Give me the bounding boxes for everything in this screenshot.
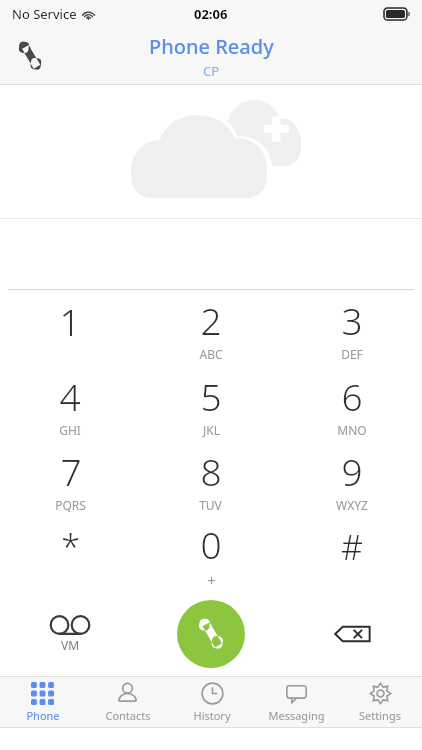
staticText: TUV (199, 497, 222, 513)
staticText: 6 (341, 371, 363, 421)
staticText: Settings (359, 708, 401, 723)
button[interactable]: # (281, 517, 422, 592)
button[interactable]: Contacts (85, 677, 170, 727)
staticText: WXYZ (336, 497, 368, 513)
button[interactable]: 1 (0, 290, 140, 366)
button[interactable]: Phone status (8, 34, 52, 78)
staticText: 7 (60, 446, 82, 496)
staticText: DEF (341, 346, 363, 362)
staticText: # (341, 524, 363, 570)
button[interactable]: History (170, 677, 254, 727)
button[interactable]: 5 (140, 366, 281, 442)
staticText: * (61, 524, 80, 570)
staticText: 9 (341, 446, 363, 496)
button[interactable]: 2 (140, 290, 281, 366)
staticText: 2 (200, 295, 222, 345)
button[interactable]: 0 (140, 517, 281, 592)
button[interactable]: * (0, 517, 140, 592)
staticText: Phone (26, 708, 60, 723)
staticText: Contacts (105, 708, 151, 723)
staticText: Messaging (268, 708, 325, 723)
staticText: CP (203, 62, 220, 80)
staticText: 3 (341, 295, 363, 345)
staticText: JKL (203, 422, 220, 438)
button[interactable]: Voicemail (0, 592, 140, 676)
staticText: No Service (12, 5, 77, 23)
staticText: VM (61, 637, 80, 653)
staticText: ABC (199, 346, 223, 362)
staticText: 5 (200, 371, 222, 421)
staticText: MNO (337, 422, 367, 438)
button[interactable]: 3 (281, 290, 422, 366)
staticText: History (193, 708, 231, 723)
staticText: Phone Ready (149, 33, 274, 60)
staticText: GHI (59, 422, 81, 438)
button[interactable]: Call (177, 600, 245, 668)
staticText: 02:06 (194, 5, 228, 23)
button[interactable]: Backspace (281, 592, 422, 676)
staticText: 1 (59, 296, 81, 346)
button[interactable]: 4 (0, 366, 140, 442)
button[interactable]: 7 (0, 442, 140, 517)
button[interactable]: Settings (338, 677, 422, 727)
staticText: 4 (59, 371, 81, 421)
button[interactable]: 9 (281, 442, 422, 517)
button[interactable]: Phone (0, 677, 85, 727)
staticText: + (207, 570, 216, 590)
button[interactable]: Messaging (254, 677, 338, 727)
button[interactable]: 6 (281, 366, 422, 442)
staticText: 0 (200, 519, 222, 569)
staticText: 8 (200, 446, 222, 496)
staticText: PQRS (55, 497, 86, 513)
button[interactable]: 8 (140, 442, 281, 517)
